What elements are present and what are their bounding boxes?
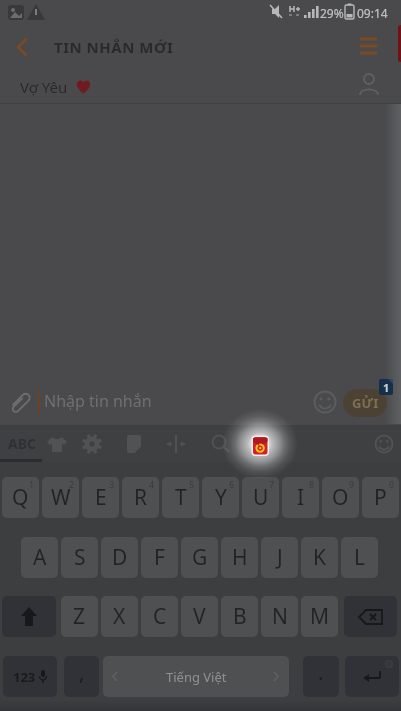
button[interactable]: L (341, 537, 378, 578)
staticText: , (79, 659, 85, 686)
staticText: X (113, 602, 126, 631)
button[interactable]: V (181, 596, 218, 637)
button[interactable]: B (221, 596, 258, 637)
staticText: 09:14 (357, 5, 388, 21)
button[interactable] (162, 430, 190, 458)
staticText: 123 (13, 668, 36, 686)
button[interactable]: W (42, 477, 79, 518)
button[interactable]: ABC (0, 425, 44, 462)
button[interactable] (246, 429, 274, 459)
staticText: D (112, 543, 128, 572)
button[interactable]: N (261, 596, 298, 637)
staticText: S (74, 543, 86, 572)
button[interactable] (4, 386, 36, 418)
staticText: 4 (149, 478, 155, 490)
button[interactable]: Y (202, 477, 239, 518)
staticText: W (51, 483, 71, 512)
button[interactable]: Tiếng Việt (103, 656, 289, 697)
staticText: Z (73, 602, 86, 631)
button[interactable]: C (141, 596, 178, 637)
staticText: Tiếng Việt (166, 668, 227, 686)
staticText: 0 (389, 478, 395, 490)
button[interactable]: U (242, 477, 279, 518)
button[interactable] (120, 430, 148, 458)
staticText: Y (215, 483, 227, 512)
staticText: 8 (309, 478, 315, 490)
button[interactable]: A (21, 537, 58, 578)
button[interactable]: I (282, 477, 319, 518)
staticText: F (154, 543, 165, 572)
button[interactable] (352, 70, 384, 100)
staticText: M (310, 602, 330, 631)
staticText: L (354, 543, 366, 572)
staticText: P (374, 483, 387, 512)
staticText: R (134, 483, 148, 512)
button[interactable] (352, 32, 384, 62)
staticText: . (318, 659, 324, 686)
button[interactable] (345, 656, 399, 697)
button[interactable] (2, 596, 56, 637)
staticText: N (272, 602, 288, 631)
staticText: K (313, 543, 326, 572)
button[interactable]: F (141, 537, 178, 578)
staticText: C (153, 602, 167, 631)
staticText: I (297, 483, 305, 512)
staticText: 2 (69, 478, 75, 490)
staticText: 9 (349, 478, 355, 490)
staticText: 1 (29, 478, 35, 490)
button[interactable]: J (261, 537, 298, 578)
staticText: ABC (8, 434, 36, 453)
staticText: Nhập tin nhắn (44, 390, 152, 412)
button[interactable] (78, 430, 106, 458)
staticText: J (277, 543, 283, 572)
button[interactable]: X (101, 596, 138, 637)
staticText: B (233, 602, 247, 631)
staticText: O (332, 483, 349, 512)
button[interactable]: Vợ Yêu (0, 66, 401, 104)
staticText: 5 (189, 478, 195, 490)
button[interactable]: T (162, 477, 199, 518)
staticText: U (253, 483, 269, 512)
button[interactable] (8, 33, 38, 61)
button[interactable]: D (101, 537, 138, 578)
staticText: E (95, 483, 107, 512)
staticText: A (33, 543, 47, 572)
button[interactable] (43, 430, 71, 458)
staticText: 29% (320, 5, 344, 21)
staticText: GỬI (352, 394, 379, 412)
staticText: H (232, 543, 248, 572)
button[interactable]: S (61, 537, 98, 578)
button[interactable]: K (301, 537, 338, 578)
button[interactable]: G (181, 537, 218, 578)
staticText: TIN NHẮN MỚI (54, 37, 174, 57)
button[interactable]: H (221, 537, 258, 578)
button[interactable] (370, 430, 398, 458)
button[interactable] (312, 389, 338, 415)
staticText: Vợ Yêu (20, 77, 68, 97)
staticText: 7 (269, 478, 275, 490)
button[interactable] (207, 430, 235, 458)
button[interactable]: GỬI (343, 389, 387, 417)
staticText: 6 (229, 478, 235, 490)
staticText: G (192, 543, 208, 572)
button[interactable]: P (362, 477, 399, 518)
button[interactable]: Z (61, 596, 98, 637)
button[interactable]: 123 (3, 656, 57, 697)
button[interactable]: M (301, 596, 338, 637)
button[interactable]: E (82, 477, 119, 518)
staticText: Q (12, 483, 29, 512)
staticText: 3 (109, 478, 115, 490)
staticText: V (193, 602, 206, 631)
staticText: T (175, 483, 187, 512)
button[interactable]: Q (2, 477, 39, 518)
button[interactable]: R (122, 477, 159, 518)
staticText: 1 (383, 380, 390, 395)
button[interactable]: O (322, 477, 359, 518)
button[interactable] (344, 596, 397, 637)
